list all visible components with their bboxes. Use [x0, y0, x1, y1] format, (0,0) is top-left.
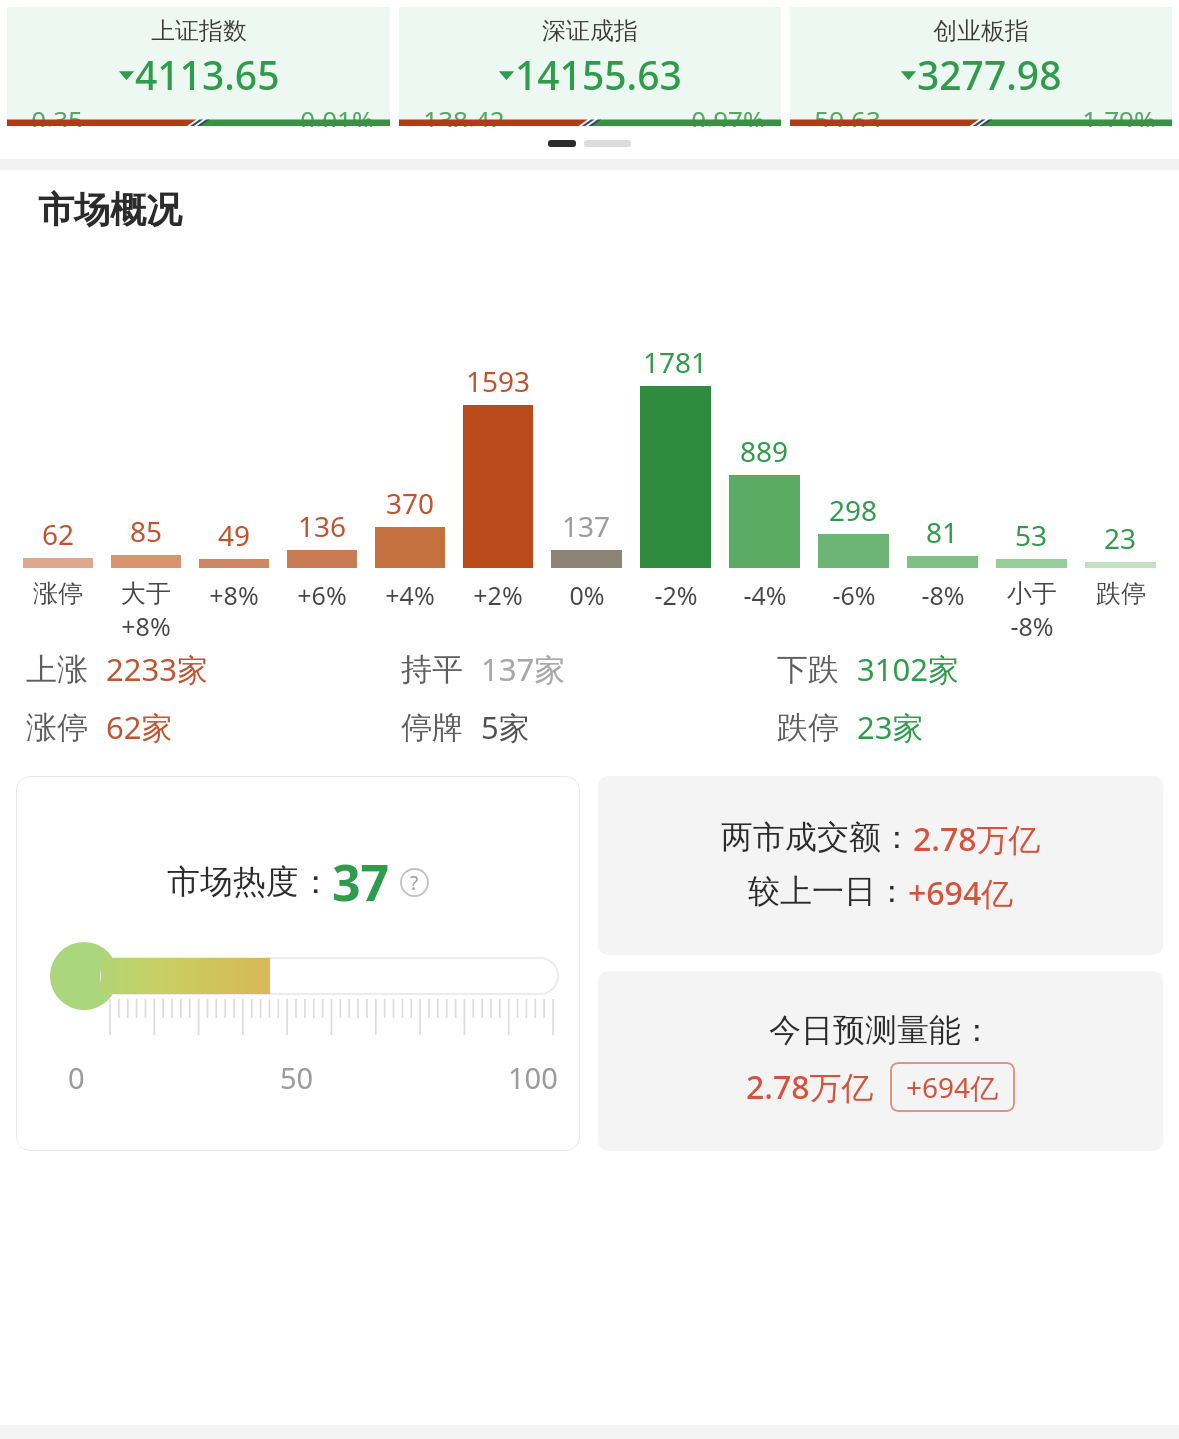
- staticText: 停牌: [401, 708, 463, 747]
- button[interactable]: 下跌: [777, 648, 1153, 690]
- button[interactable]: +694亿: [906, 1068, 999, 1106]
- button[interactable]: 上证指数: [7, 7, 390, 127]
- staticText: 14155.63: [515, 48, 682, 101]
- staticText: 市场概况: [38, 187, 182, 232]
- staticText: 23: [1104, 519, 1137, 557]
- staticText: 2.78万亿: [746, 1065, 874, 1109]
- staticText: -4%: [743, 578, 787, 612]
- staticText: 深证成指: [542, 16, 638, 46]
- staticText: 下跌: [777, 650, 839, 689]
- staticText: 53: [1015, 516, 1048, 554]
- staticText: -0.97%: [683, 102, 765, 127]
- staticText: +4%: [385, 578, 435, 612]
- staticText: 3102家: [857, 648, 959, 690]
- staticText: 4113.65: [135, 48, 280, 101]
- staticText: 50: [280, 1058, 314, 1097]
- button[interactable]: 今日预测量能：: [598, 971, 1163, 1151]
- staticText: 跌停: [777, 708, 839, 747]
- staticText: 23家: [857, 706, 924, 748]
- staticText: 2233家: [106, 648, 208, 690]
- staticText: 两市成交额：: [721, 817, 913, 857]
- staticText: 1593: [466, 362, 531, 400]
- staticText: ?: [410, 870, 419, 896]
- staticText: +2%: [473, 578, 523, 612]
- staticText: 298: [829, 491, 878, 529]
- staticText: 37: [332, 848, 390, 916]
- button[interactable]: 深证成指: [399, 7, 781, 127]
- staticText: 49: [218, 516, 251, 554]
- staticText: -2%: [654, 578, 698, 612]
- staticText: -0.35: [23, 102, 83, 127]
- button[interactable]: 市场热度说明: [400, 868, 429, 897]
- button[interactable]: 涨停: [26, 706, 401, 748]
- staticText: 3277.98: [917, 48, 1062, 101]
- staticText: -8%: [1010, 609, 1054, 643]
- staticText: 跌停: [1096, 578, 1146, 609]
- staticText: 上证指数: [151, 16, 247, 46]
- staticText: 2.78万亿: [913, 817, 1041, 861]
- staticText: 上涨: [26, 650, 88, 689]
- staticText: +6%: [297, 578, 347, 612]
- staticText: 370: [386, 484, 435, 522]
- staticText: 100: [508, 1058, 558, 1097]
- staticText: 137: [562, 507, 611, 545]
- button[interactable]: 两市成交额：: [598, 776, 1163, 955]
- staticText: -59.63: [806, 102, 881, 127]
- button[interactable]: 停牌: [401, 706, 777, 748]
- staticText: +694亿: [906, 1068, 999, 1106]
- staticText: 0: [68, 1058, 85, 1097]
- staticText: 136: [298, 507, 347, 545]
- button[interactable]: 持平: [401, 648, 777, 690]
- staticText: 涨停: [26, 708, 88, 747]
- button[interactable]: 创业板指: [790, 7, 1172, 127]
- staticText: 62: [42, 515, 75, 553]
- staticText: 5家: [481, 706, 530, 748]
- staticText: 市场热度：: [167, 861, 332, 903]
- staticText: 81: [926, 513, 959, 551]
- staticText: 889: [740, 432, 789, 470]
- staticText: 较上一日：: [748, 871, 908, 911]
- button[interactable]: 市场热度：: [16, 776, 580, 1151]
- staticText: 62家: [106, 706, 173, 748]
- staticText: 持平: [401, 650, 463, 689]
- staticText: 小于: [1007, 578, 1057, 609]
- staticText: 1781: [643, 343, 708, 381]
- staticText: -0.01%: [292, 102, 374, 127]
- staticText: -6%: [832, 578, 876, 612]
- button[interactable]: 跌停: [777, 706, 1153, 748]
- staticText: 创业板指: [933, 16, 1029, 46]
- staticText: +694亿: [908, 871, 1014, 915]
- staticText: 今日预测量能：: [769, 1010, 993, 1050]
- staticText: 85: [130, 512, 163, 550]
- staticText: 涨停: [33, 578, 83, 609]
- staticText: -138.42: [415, 102, 505, 127]
- staticText: 大于: [121, 578, 171, 609]
- staticText: -1.79%: [1074, 102, 1156, 127]
- button[interactable]: 上涨: [26, 648, 401, 690]
- staticText: -8%: [921, 578, 965, 612]
- staticText: +8%: [121, 609, 171, 643]
- staticText: +8%: [209, 578, 259, 612]
- staticText: 0%: [569, 578, 605, 612]
- staticText: 137家: [481, 648, 566, 690]
